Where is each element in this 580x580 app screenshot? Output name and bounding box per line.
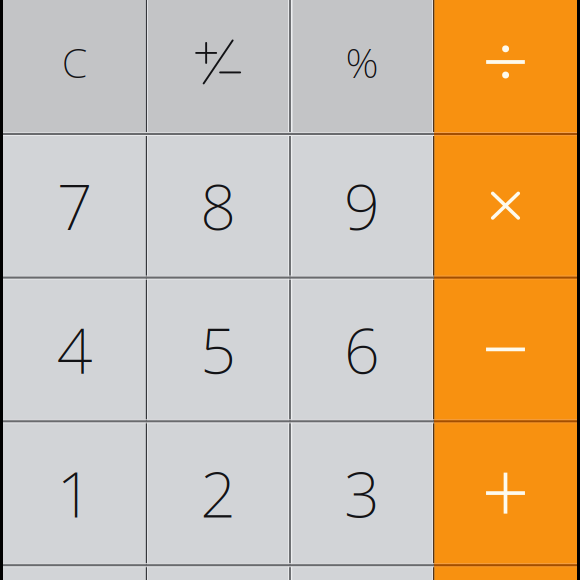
staticText: 9 — [344, 164, 380, 247]
button[interactable]: 2 — [146, 421, 290, 565]
staticText: 7 — [57, 164, 93, 247]
staticText: 1 — [57, 451, 93, 535]
button[interactable]: Plus Minus — [146, 0, 290, 134]
button[interactable]: Divide — [434, 0, 577, 134]
button[interactable]: Subtract — [434, 277, 577, 421]
button[interactable]: Multiply — [434, 134, 577, 277]
button[interactable]: 1 — [3, 421, 146, 565]
button[interactable]: C — [3, 0, 146, 134]
button[interactable]: Equals — [434, 565, 577, 580]
button[interactable] — [146, 565, 290, 580]
staticText: 3 — [344, 451, 380, 535]
staticText: 8 — [200, 164, 236, 247]
staticText: C — [62, 34, 88, 89]
button[interactable]: 3 — [290, 421, 434, 565]
button[interactable]: % — [290, 0, 434, 134]
staticText: 5 — [200, 308, 236, 391]
button[interactable]: . — [290, 565, 434, 580]
button[interactable]: 7 — [3, 134, 146, 277]
staticText: 6 — [344, 308, 380, 391]
button[interactable]: 0 — [3, 565, 146, 580]
staticText: 2 — [200, 451, 236, 535]
button[interactable]: 8 — [146, 134, 290, 277]
staticText: 4 — [57, 308, 93, 391]
button[interactable]: 4 — [3, 277, 146, 421]
button[interactable]: Add — [434, 421, 577, 565]
staticText: % — [345, 34, 378, 89]
button[interactable]: 6 — [290, 277, 434, 421]
button[interactable]: 5 — [146, 277, 290, 421]
button[interactable]: 9 — [290, 134, 434, 277]
